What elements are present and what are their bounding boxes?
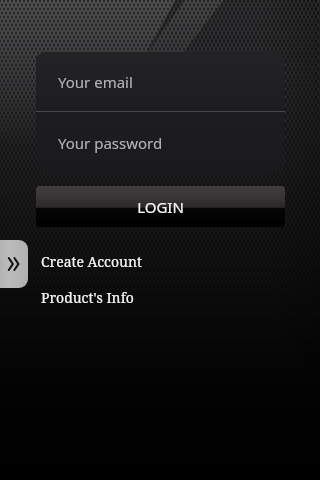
button[interactable]: Create Account [34,247,149,275]
button[interactable]: Your email [36,52,285,111]
staticText: LOGIN [137,197,184,217]
staticText: Product's Info [41,288,134,307]
button[interactable]: Product's Info [34,283,141,311]
staticText: Your email [58,72,133,92]
button[interactable]: Open menu [0,240,28,288]
button[interactable]: Your password [36,112,285,173]
staticText: Create Account [41,252,142,271]
staticText: Your password [58,133,163,153]
button[interactable]: LOGIN [36,186,285,227]
